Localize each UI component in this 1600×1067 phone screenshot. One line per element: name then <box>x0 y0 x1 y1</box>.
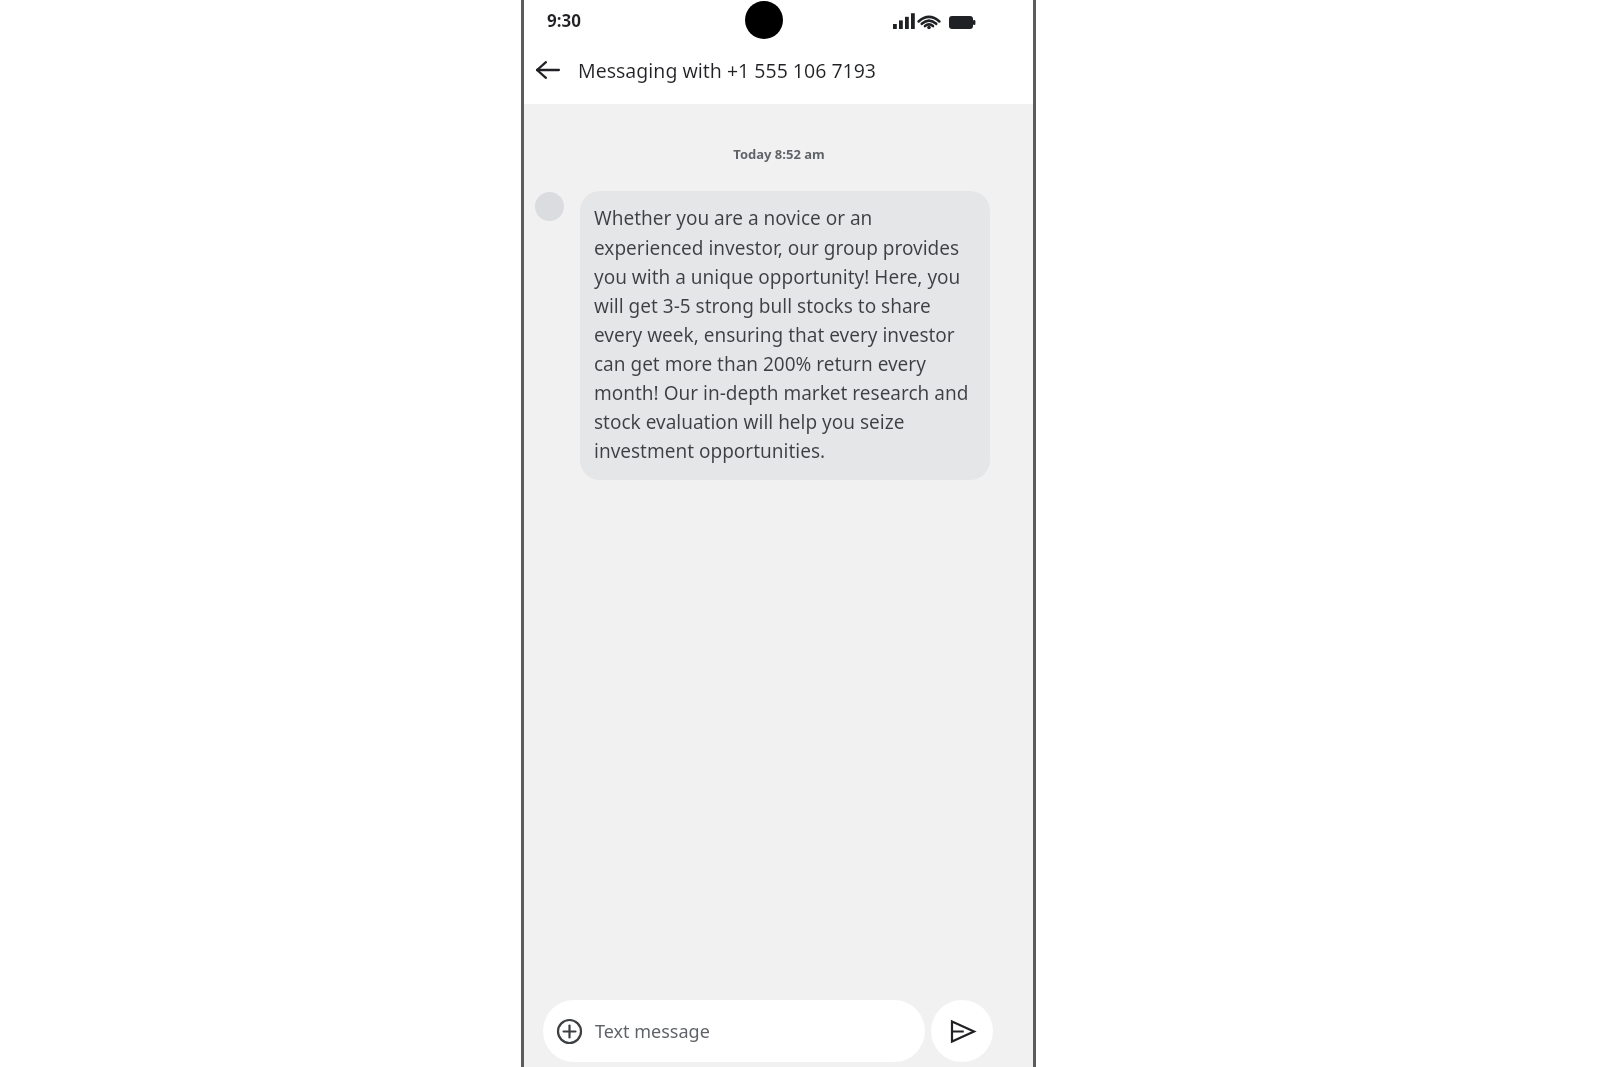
button[interactable]: Back <box>523 45 573 95</box>
staticText: Whether you are a novice or an experienc… <box>594 205 974 464</box>
staticText: 9:30 <box>547 9 581 32</box>
staticText: Messaging with +1 555 106 7193 <box>578 57 877 84</box>
button[interactable]: Whether you are a novice or an experienc… <box>580 191 990 480</box>
staticText: Text message <box>595 1019 710 1044</box>
button[interactable]: Text message <box>543 1000 925 1062</box>
staticText: Today 8:52 am <box>733 145 825 163</box>
button[interactable]: Send <box>931 1000 993 1062</box>
